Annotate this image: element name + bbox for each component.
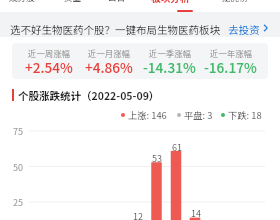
staticText: 25 <box>13 196 23 209</box>
staticText: +4.86% <box>85 57 133 77</box>
button[interactable]: 公告 <box>107 0 127 3</box>
staticText: 个股涨跌统计（2022-05-09） <box>18 88 160 102</box>
staticText: 53 <box>152 152 162 165</box>
button[interactable]: 成分股 <box>8 0 36 3</box>
staticText: 61 <box>172 141 182 154</box>
staticText: 选不好生物医药个股？一键布局生物医药板块 <box>10 22 220 37</box>
staticText: 14 <box>191 207 201 220</box>
button[interactable]: 个股涨跌统计（2022-05-09） <box>12 88 160 102</box>
staticText: 近一年涨幅 <box>210 47 252 59</box>
staticText: +2.54% <box>25 57 73 77</box>
button[interactable]: 板块分析 <box>150 0 191 3</box>
staticText: 近一周涨幅 <box>28 47 70 59</box>
staticText: 近一月涨幅 <box>88 47 130 59</box>
staticText: 成分股 <box>9 0 35 3</box>
staticText: 75 <box>13 125 23 138</box>
button[interactable]: 近一年涨幅 <box>200 43 261 79</box>
staticText: 12 <box>133 210 143 220</box>
staticText: 近一季涨幅 <box>149 47 191 59</box>
button[interactable]: 下跌: 18 <box>221 108 262 121</box>
button[interactable]: 上涨: 146 <box>121 108 167 121</box>
button[interactable]: 资金 <box>63 0 83 3</box>
staticText: -16.17% <box>204 57 257 77</box>
staticText: 去投资 <box>228 22 260 37</box>
button[interactable]: 近一月涨幅 <box>79 43 139 79</box>
button[interactable]: 选不好生物医药个股？一键布局生物医药板块 <box>0 12 280 37</box>
staticText: 资金 <box>64 0 82 3</box>
staticText: 平盘: 3 <box>184 108 213 121</box>
button[interactable]: 近一周涨幅 <box>19 43 79 79</box>
button[interactable]: 近一季涨幅 <box>139 43 200 79</box>
button[interactable]: 龙虎榜 <box>221 0 249 3</box>
button[interactable]: 平盘: 3 <box>177 108 213 121</box>
staticText: 板块分析 <box>151 0 190 3</box>
staticText: 龙虎榜 <box>222 0 248 3</box>
staticText: 50 <box>13 161 23 174</box>
staticText: 下跌: 18 <box>228 108 262 121</box>
staticText: 上涨: 146 <box>128 108 167 121</box>
staticText: -14.31% <box>143 57 196 77</box>
staticText: 公告 <box>108 0 126 3</box>
